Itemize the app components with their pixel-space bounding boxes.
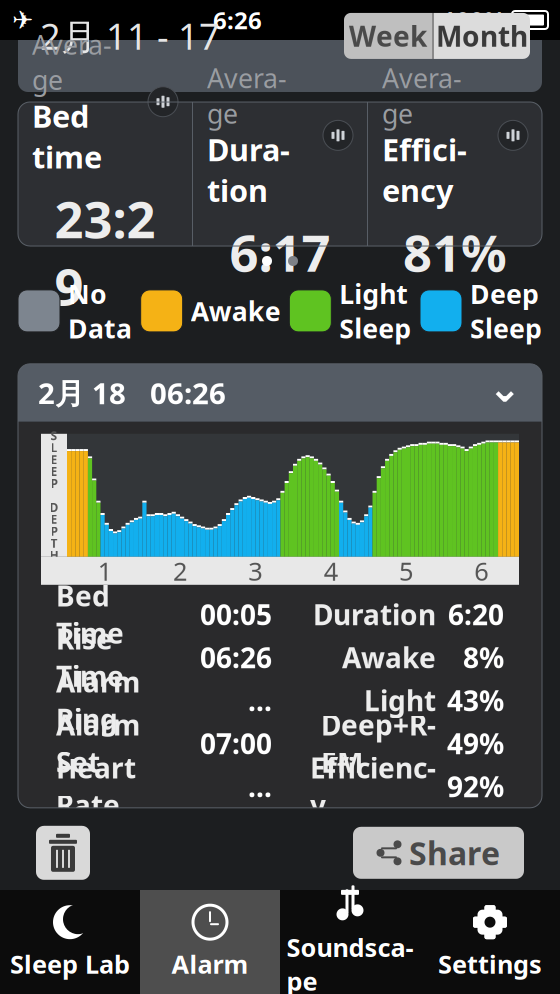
staticText: 07:00 — [200, 725, 272, 762]
staticText: Alarm Ring — [56, 663, 140, 737]
button[interactable]: Share — [353, 827, 524, 879]
staticText: Heart Rate — [56, 749, 136, 823]
staticText: Bed time — [32, 95, 102, 177]
staticText: 43% — [447, 682, 504, 719]
staticText: Month — [436, 17, 528, 54]
staticText: Sleep Lab — [10, 947, 130, 981]
staticText: 6:20 — [448, 596, 504, 633]
staticText: P — [50, 475, 57, 491]
staticText: E — [50, 463, 57, 479]
staticText: Awake — [342, 639, 436, 676]
staticText: Average — [382, 60, 462, 131]
staticText: Alarm Set — [56, 706, 140, 780]
staticText: S — [50, 428, 57, 444]
staticText: P — [50, 523, 57, 539]
button[interactable]: Week — [344, 13, 432, 59]
staticText: 6:26 — [213, 4, 262, 36]
button[interactable]: Delete — [36, 826, 90, 880]
button[interactable]: Sleep Lab — [0, 890, 140, 994]
staticText: Sleep — [470, 310, 542, 346]
staticText: E — [50, 511, 57, 527]
staticText: 6 — [474, 554, 488, 588]
staticText: D — [49, 499, 58, 515]
button[interactable]: Alarm — [140, 890, 280, 994]
button[interactable]: Soundscape — [280, 890, 420, 994]
staticText: 4 — [324, 554, 338, 588]
staticText: Efficiency — [310, 749, 436, 823]
staticText: ... — [248, 682, 272, 719]
staticText: 100% — [442, 4, 506, 36]
staticText: 2月 11 - 17 — [40, 12, 220, 60]
staticText: Light — [364, 682, 436, 719]
staticText: 23:29 — [54, 185, 155, 319]
staticText: Sleep — [339, 310, 411, 346]
staticText: 81% — [403, 218, 507, 286]
staticText — [52, 487, 55, 503]
staticText: Average — [207, 60, 287, 131]
staticText: Share — [409, 832, 500, 874]
staticText: Alarm — [171, 947, 248, 981]
button[interactable]: 2月 18 06:26 — [18, 364, 542, 422]
staticText: 8% — [463, 639, 504, 676]
staticText: Efficiency — [382, 129, 467, 210]
staticText: 2月 18 06:26 — [38, 373, 226, 412]
staticText: Week — [349, 17, 427, 54]
staticText: 49% — [447, 725, 504, 762]
staticText: 1 — [98, 554, 112, 588]
button[interactable]: Month — [434, 13, 530, 59]
staticText: ⌄ — [488, 365, 522, 410]
staticText: Deep — [470, 276, 539, 311]
staticText: No — [68, 276, 107, 311]
staticText: 06:26 — [200, 639, 272, 676]
staticText: E — [50, 452, 57, 467]
staticText: ... — [248, 768, 272, 805]
staticText: L — [50, 440, 57, 455]
staticText: Bed Time — [56, 577, 124, 651]
staticText: Deep+REM — [321, 706, 436, 780]
staticText: T — [50, 535, 57, 551]
staticText: Duration — [313, 596, 436, 633]
staticText: Data — [68, 310, 132, 346]
staticText: ✈ — [12, 6, 33, 34]
staticText: Settings — [438, 947, 542, 981]
staticText: Average — [32, 27, 112, 97]
staticText: 92% — [447, 768, 504, 805]
button[interactable]: Settings — [420, 890, 560, 994]
staticText: Light — [339, 276, 408, 311]
staticText: 6:17 — [229, 218, 330, 286]
staticText: Soundscape — [286, 930, 413, 994]
staticText: Awake — [191, 293, 281, 329]
staticText: H — [49, 547, 58, 563]
staticText: Duration — [207, 129, 290, 210]
staticText: 5 — [399, 554, 413, 588]
staticText: Rise Time — [56, 620, 124, 694]
staticText: 2 — [173, 554, 187, 588]
staticText: 00:05 — [200, 596, 272, 633]
staticText: 3 — [248, 554, 262, 588]
